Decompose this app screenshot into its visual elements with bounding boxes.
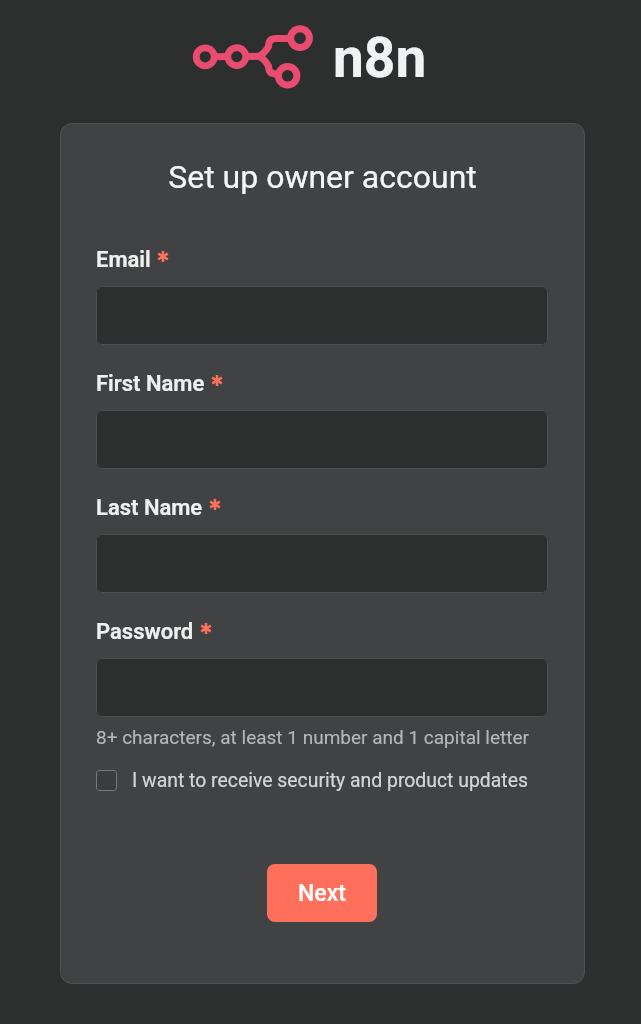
other: Receive updates checkbox bbox=[96, 770, 117, 791]
staticText: Next bbox=[298, 880, 346, 907]
button[interactable]: Email input field bbox=[96, 286, 548, 345]
staticText: 8+ characters, at least 1 number and 1 c… bbox=[96, 726, 529, 748]
button[interactable]: Password input field bbox=[96, 658, 548, 717]
staticText: Set up owner account bbox=[60, 158, 585, 196]
staticText: First Name bbox=[96, 371, 205, 397]
staticText: Email bbox=[96, 247, 151, 273]
staticText: n8n bbox=[333, 26, 427, 90]
button[interactable]: First Name input field bbox=[96, 410, 548, 469]
button[interactable]: Receive updates checkbox bbox=[96, 769, 528, 792]
other: n8n logo bbox=[190, 20, 320, 100]
staticText: Last Name bbox=[96, 495, 203, 521]
button[interactable]: Next bbox=[267, 864, 377, 922]
staticText: I want to receive security and product u… bbox=[132, 769, 528, 792]
button[interactable]: Last Name input field bbox=[96, 534, 548, 593]
staticText: Password bbox=[96, 619, 194, 645]
